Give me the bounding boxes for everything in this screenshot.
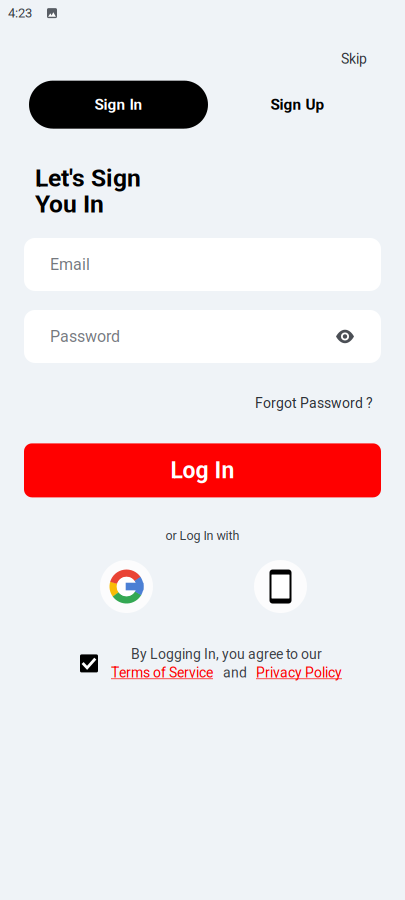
staticText: 4:23	[8, 5, 32, 21]
button[interactable]: Log In	[24, 443, 381, 497]
staticText: Terms of Service	[111, 664, 213, 681]
staticText: Log In	[170, 457, 234, 484]
button[interactable]: Privacy Policy	[256, 664, 342, 681]
button[interactable]: Skip	[333, 46, 375, 72]
button[interactable]: Forgot Password ?	[249, 391, 379, 415]
button[interactable]: Show password	[330, 320, 360, 353]
staticText: Password	[50, 327, 120, 346]
staticText: Sign In	[94, 96, 142, 114]
staticText: Forgot Password ?	[255, 395, 373, 411]
staticText: You In	[35, 190, 104, 218]
button[interactable]: Continue with phone number	[254, 560, 307, 613]
button[interactable]: Sign Up	[208, 81, 387, 129]
staticText: By Logging In, you agree to our	[131, 646, 322, 662]
staticText: Sign Up	[270, 96, 324, 114]
button[interactable]: Terms of Service	[111, 664, 213, 681]
staticText: and	[223, 664, 247, 681]
staticText: Let's Sign	[35, 164, 141, 192]
button[interactable]: Accept terms and conditions	[80, 654, 98, 672]
button[interactable]: Sign In	[29, 81, 208, 129]
staticText: or Log In with	[165, 528, 239, 543]
staticText: Skip	[341, 51, 367, 67]
button[interactable]: Continue with Google	[100, 560, 153, 613]
staticText: Privacy Policy	[256, 664, 342, 681]
staticText: Email	[50, 255, 90, 274]
